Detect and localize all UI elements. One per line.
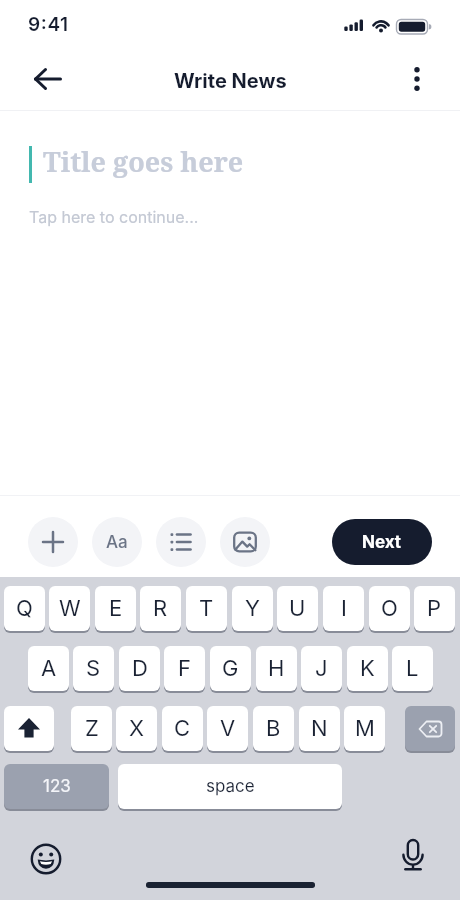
staticText: Aa (106, 532, 128, 553)
button[interactable]: O (369, 586, 410, 631)
staticText: O (381, 595, 398, 622)
staticText: 9:41 (28, 13, 69, 36)
staticText: F (178, 655, 191, 682)
staticText: I (341, 595, 347, 622)
staticText: G (222, 655, 239, 682)
button[interactable]: A (28, 646, 69, 691)
button[interactable] (156, 517, 206, 567)
button[interactable] (393, 835, 433, 875)
staticText: Y (245, 595, 260, 622)
button[interactable] (395, 57, 439, 101)
button[interactable]: Aa (92, 517, 142, 567)
button[interactable] (24, 55, 72, 103)
button[interactable] (4, 706, 54, 751)
button[interactable]: C (162, 706, 203, 751)
button[interactable] (220, 517, 270, 567)
button[interactable]: X (116, 706, 157, 751)
button[interactable]: B (253, 706, 294, 751)
button[interactable]: K (347, 646, 388, 691)
button[interactable]: I (323, 586, 364, 631)
staticText: H (268, 655, 285, 682)
button[interactable]: L (392, 646, 433, 691)
button[interactable]: R (140, 586, 181, 631)
button[interactable]: H (256, 646, 297, 691)
staticText: W (59, 595, 81, 622)
button[interactable]: Y (232, 586, 273, 631)
staticText: C (174, 715, 191, 742)
button[interactable]: space (118, 764, 342, 809)
staticText: Title goes here (43, 143, 244, 180)
staticText: A (41, 655, 57, 682)
button[interactable]: P (414, 586, 455, 631)
staticText: X (129, 715, 145, 742)
staticText: L (406, 655, 419, 682)
button[interactable]: E (95, 586, 136, 631)
staticText: Write News (174, 69, 287, 93)
button[interactable]: N (299, 706, 340, 751)
staticText: M (355, 715, 375, 742)
button[interactable]: J (301, 646, 342, 691)
button[interactable]: D (119, 646, 160, 691)
button[interactable] (28, 517, 78, 567)
staticText: 123 (43, 776, 71, 797)
button[interactable]: G (210, 646, 251, 691)
staticText: P (427, 595, 442, 622)
button[interactable]: W (49, 586, 90, 631)
button[interactable]: M (344, 706, 385, 751)
button[interactable] (26, 839, 66, 879)
staticText: Q (16, 595, 33, 622)
button[interactable]: F (164, 646, 205, 691)
staticText: B (266, 715, 281, 742)
button[interactable]: 123 (4, 764, 109, 809)
staticText: K (360, 655, 375, 682)
staticText: V (220, 715, 236, 742)
staticText: T (199, 595, 214, 622)
staticText: R (153, 595, 168, 622)
staticText: S (86, 655, 101, 682)
button[interactable]: Q (4, 586, 45, 631)
button[interactable]: S (73, 646, 114, 691)
staticText: space (206, 776, 255, 797)
button[interactable]: Next (332, 519, 432, 565)
staticText: Z (85, 715, 99, 742)
staticText: J (315, 655, 328, 682)
staticText: Next (362, 532, 402, 553)
button[interactable]: T (186, 586, 227, 631)
staticText: E (109, 595, 123, 622)
staticText: N (311, 715, 328, 742)
staticText: U (289, 595, 306, 622)
staticText: D (132, 655, 148, 682)
staticText: Tap here to continue... (29, 207, 199, 226)
button[interactable] (405, 706, 455, 751)
button[interactable]: Z (71, 706, 112, 751)
button[interactable]: U (277, 586, 318, 631)
button[interactable]: V (207, 706, 248, 751)
